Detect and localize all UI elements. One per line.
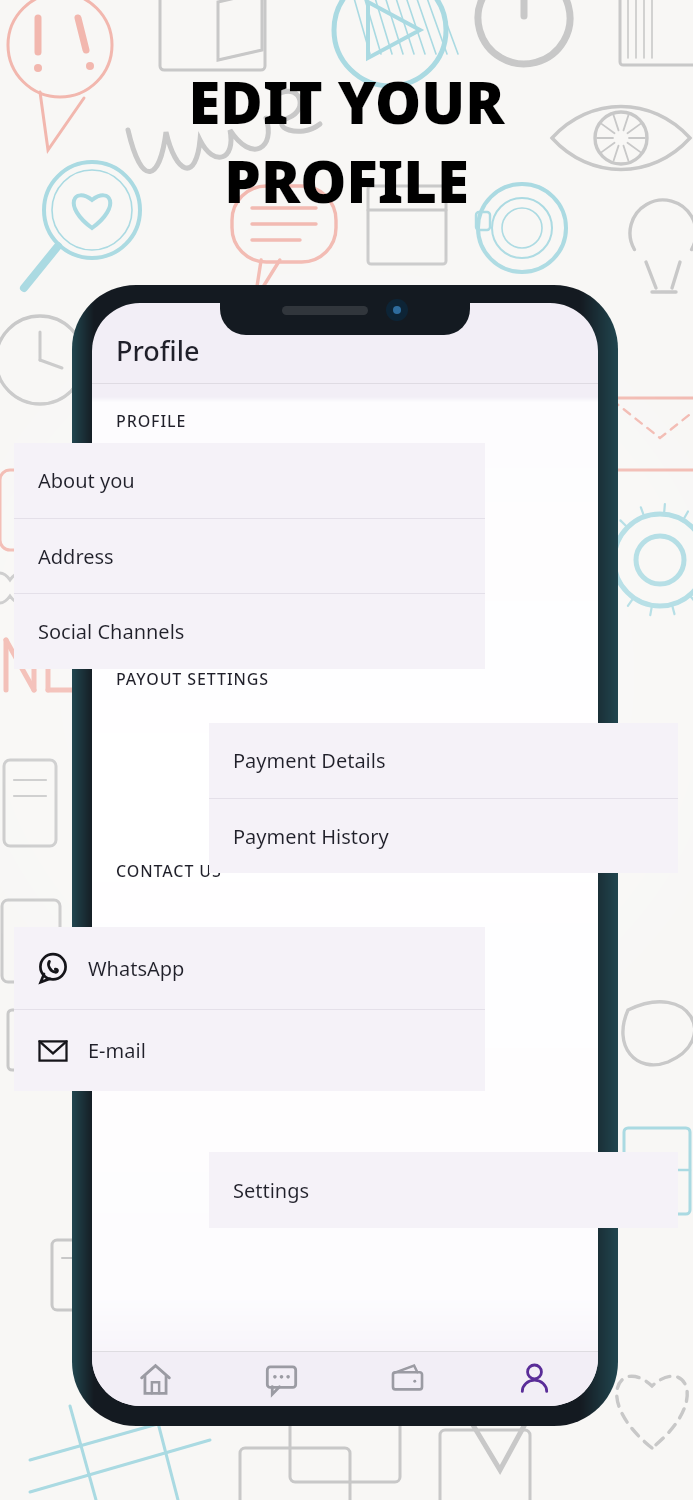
button[interactable]: Messages bbox=[218, 1352, 344, 1406]
button[interactable]: WhatsApp bbox=[14, 927, 485, 1009]
button[interactable]: Wallet bbox=[344, 1352, 471, 1406]
staticText: EDIT YOUR bbox=[188, 62, 505, 141]
button[interactable]: Profile bbox=[471, 1352, 598, 1406]
staticText: CONTACT US bbox=[116, 860, 222, 882]
staticText: SETTINGS bbox=[116, 1054, 198, 1076]
staticText: E-mail bbox=[88, 1037, 146, 1064]
button[interactable]: About you bbox=[14, 443, 485, 518]
button[interactable]: Payment History bbox=[209, 799, 678, 873]
staticText: PROFILE bbox=[224, 141, 469, 220]
staticText: PROFILE bbox=[116, 410, 187, 432]
button[interactable]: E-mail bbox=[14, 1010, 485, 1091]
staticText: Social Channels bbox=[38, 618, 185, 645]
button[interactable]: Address bbox=[14, 519, 485, 593]
staticText: Payment Details bbox=[233, 747, 386, 774]
staticText: Address bbox=[38, 543, 114, 570]
button[interactable]: Logout bbox=[283, 1178, 407, 1227]
staticText: PAYOUT SETTINGS bbox=[116, 668, 270, 690]
button[interactable]: Payment Details bbox=[209, 723, 678, 798]
button[interactable]: Home bbox=[92, 1352, 218, 1406]
staticText: Payment History bbox=[233, 823, 389, 850]
button[interactable]: Social Channels bbox=[14, 594, 485, 669]
staticText: WhatsApp bbox=[88, 955, 185, 982]
staticText: Profile bbox=[116, 332, 200, 369]
staticText: Settings bbox=[233, 1177, 310, 1204]
staticText: About you bbox=[38, 467, 135, 494]
button[interactable]: Settings bbox=[209, 1152, 678, 1228]
